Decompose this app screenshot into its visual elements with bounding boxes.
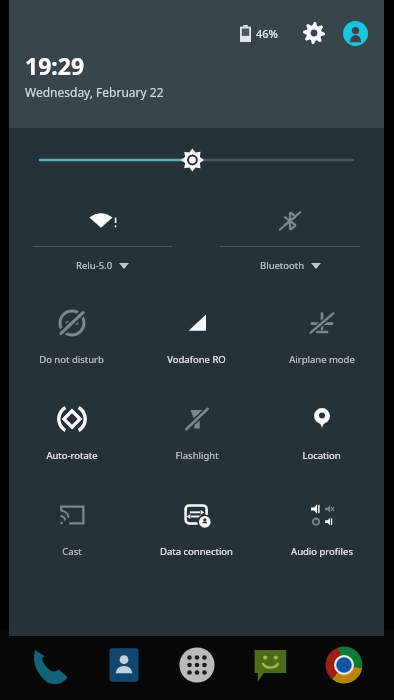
button[interactable]: Auto-rotate: [9, 386, 134, 482]
button[interactable]: Messaging: [243, 638, 297, 692]
staticText: Relu-5.0: [76, 259, 113, 272]
staticText: Airplane mode: [289, 353, 355, 366]
button[interactable]: User profile: [338, 16, 372, 50]
staticText: Location: [302, 449, 341, 462]
button[interactable]: Brightness: [9, 128, 384, 192]
staticText: Vodafone RO: [167, 353, 226, 366]
staticText: Bluetooth: [260, 259, 305, 272]
button[interactable]: Airplane mode: [259, 290, 384, 386]
staticText: 46%: [256, 26, 278, 41]
staticText: 19:29: [25, 50, 85, 81]
button[interactable]: Settings: [297, 16, 331, 50]
button[interactable]: Flashlight: [134, 386, 259, 482]
button[interactable]: Data connection: [134, 482, 259, 578]
staticText: Auto-rotate: [46, 449, 98, 462]
button[interactable]: Vodafone RO: [134, 290, 259, 386]
button[interactable]: Phone: [23, 638, 77, 692]
button[interactable]: Do not disturb: [9, 290, 134, 386]
staticText: Cast: [62, 545, 82, 558]
staticText: Wednesday, February 22: [25, 84, 164, 100]
staticText: Flashlight: [175, 449, 219, 462]
button[interactable]: Cast: [9, 482, 134, 578]
button[interactable]: Chrome: [317, 638, 371, 692]
button[interactable]: Bluetooth: [220, 192, 360, 290]
button[interactable]: Contacts: [97, 638, 151, 692]
staticText: Do not disturb: [39, 353, 104, 366]
button[interactable]: Location: [259, 386, 384, 482]
button[interactable]: Audio profiles: [259, 482, 384, 578]
staticText: Data connection: [160, 545, 233, 558]
staticText: Audio profiles: [291, 545, 353, 558]
button[interactable]: Wi-Fi: [33, 192, 172, 290]
button[interactable]: Apps: [170, 638, 224, 692]
